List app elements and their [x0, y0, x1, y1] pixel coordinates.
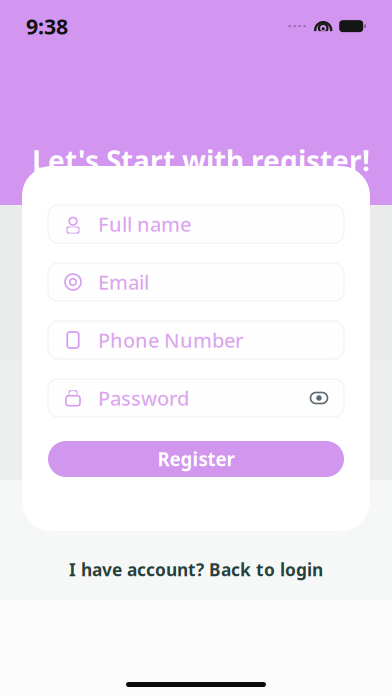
staticText: Register [157, 447, 234, 471]
button[interactable]: Email [48, 263, 344, 301]
button[interactable]: Register [48, 441, 344, 477]
staticText: Let's Start with register! [32, 142, 370, 179]
staticText: 9:38 [26, 12, 68, 40]
button[interactable]: Password [48, 379, 344, 417]
button[interactable]: Phone Number [48, 321, 344, 359]
button[interactable]: Full name [48, 205, 344, 243]
staticText: Full name [98, 211, 191, 237]
button[interactable]: I have account? Back to login [55, 552, 337, 587]
staticText: Phone Number [98, 327, 243, 353]
staticText: Email [98, 269, 149, 295]
staticText: I have account? Back to login [69, 558, 323, 581]
staticText: Password [98, 385, 189, 411]
